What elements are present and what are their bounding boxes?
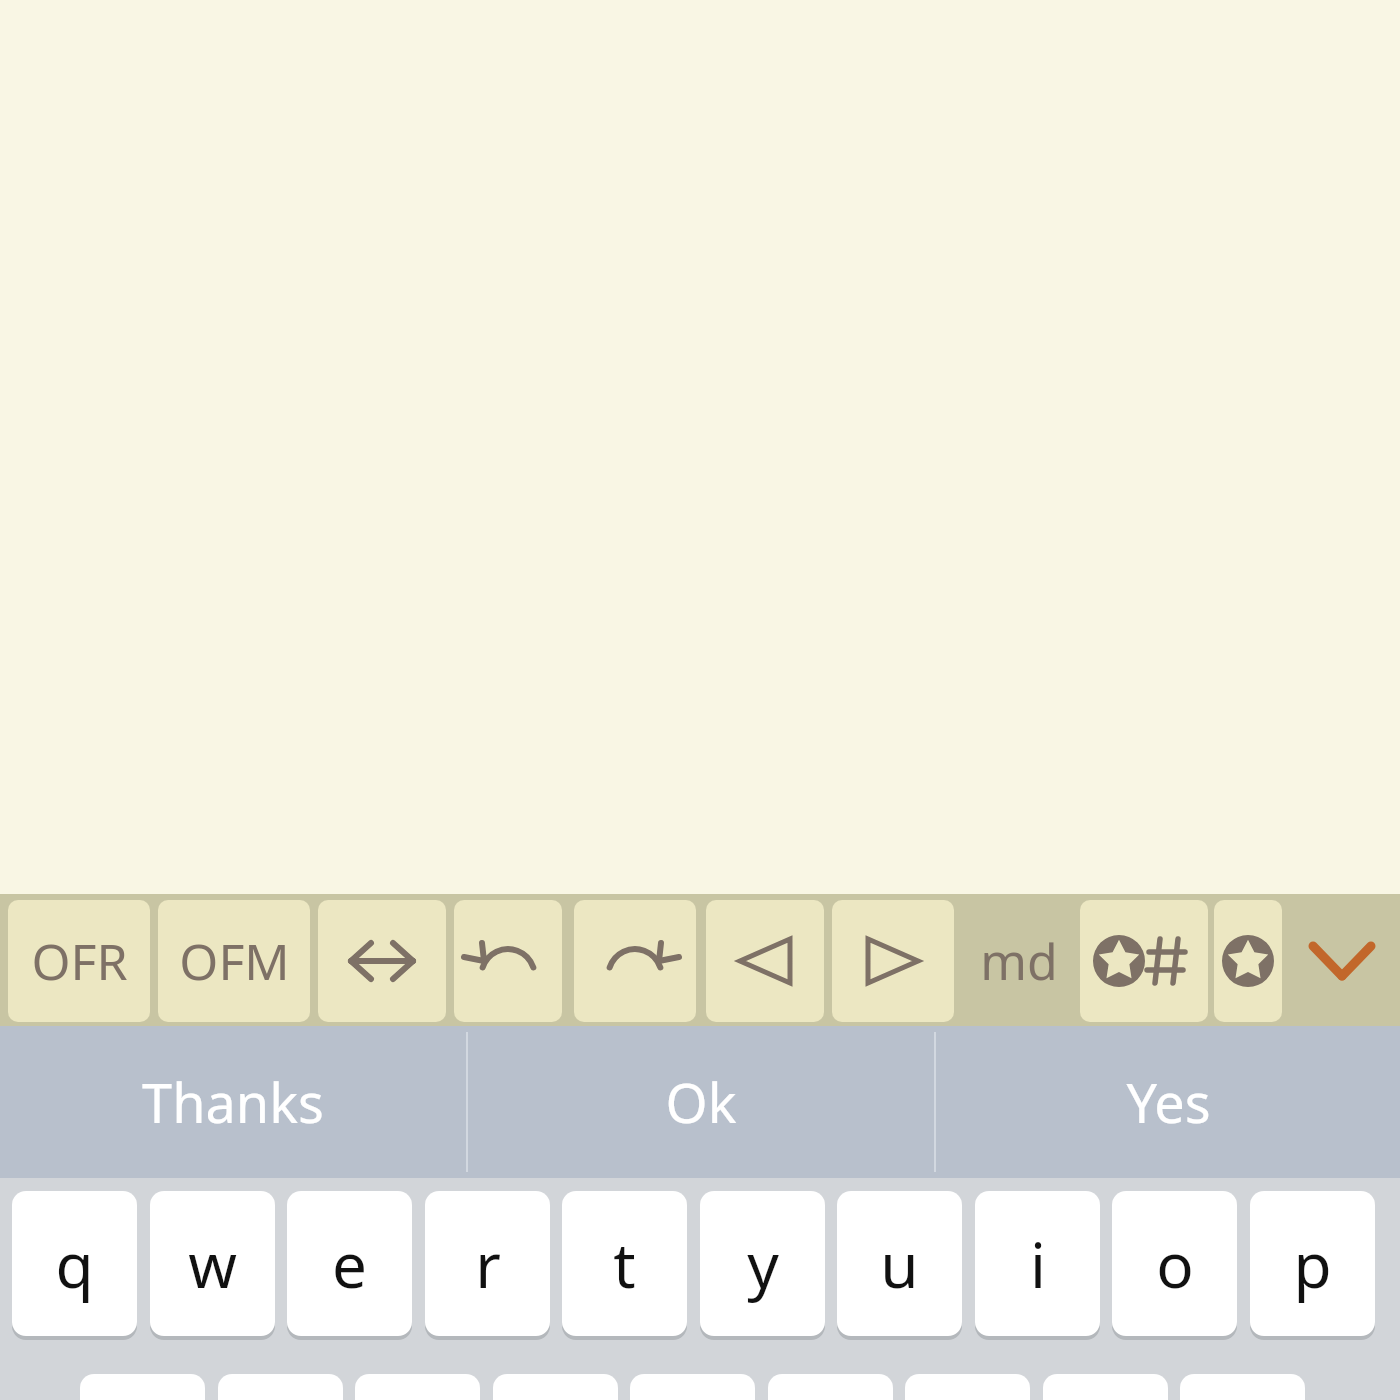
- button[interactable]: [1043, 1374, 1168, 1400]
- button[interactable]: t: [562, 1191, 687, 1336]
- button[interactable]: [905, 1374, 1030, 1400]
- staticText: w: [188, 1222, 237, 1306]
- staticText: u: [880, 1222, 919, 1306]
- button[interactable]: OFM: [158, 900, 310, 1022]
- button[interactable]: Move right: [832, 900, 954, 1022]
- button[interactable]: [218, 1374, 343, 1400]
- staticText: p: [1293, 1222, 1332, 1306]
- button[interactable]: u: [837, 1191, 962, 1336]
- staticText: Yes: [1126, 1065, 1211, 1139]
- button[interactable]: q: [12, 1191, 137, 1336]
- button[interactable]: o: [1112, 1191, 1237, 1336]
- button[interactable]: [630, 1374, 755, 1400]
- staticText: y: [747, 1222, 779, 1306]
- button[interactable]: OFR: [8, 900, 150, 1022]
- staticText: o: [1156, 1222, 1194, 1306]
- button[interactable]: Yes: [936, 1026, 1400, 1178]
- button[interactable]: Move left: [706, 900, 824, 1022]
- button[interactable]: w: [150, 1191, 275, 1336]
- button[interactable]: p: [1250, 1191, 1375, 1336]
- button[interactable]: e: [287, 1191, 412, 1336]
- staticText: OFR: [31, 927, 128, 995]
- staticText: OFM: [179, 927, 290, 995]
- staticText: i: [1030, 1222, 1046, 1306]
- button[interactable]: r: [425, 1191, 550, 1336]
- button[interactable]: Collapse toolbar: [1292, 900, 1392, 1022]
- button[interactable]: [80, 1374, 205, 1400]
- button[interactable]: [768, 1374, 893, 1400]
- button[interactable]: Thanks: [0, 1026, 466, 1178]
- button[interactable]: md: [962, 900, 1076, 1022]
- button[interactable]: Resize: [318, 900, 446, 1022]
- staticText: t: [613, 1222, 636, 1306]
- button[interactable]: [355, 1374, 480, 1400]
- button[interactable]: y: [700, 1191, 825, 1336]
- button[interactable]: Undo: [454, 900, 562, 1022]
- button[interactable]: Redo: [574, 900, 696, 1022]
- staticText: e: [332, 1222, 367, 1306]
- button[interactable]: i: [975, 1191, 1100, 1336]
- button[interactable]: Favorite: [1214, 900, 1282, 1022]
- staticText: Ok: [665, 1065, 737, 1139]
- staticText: r: [475, 1222, 501, 1306]
- button[interactable]: Favorite tag: [1080, 900, 1208, 1022]
- button[interactable]: [1180, 1374, 1305, 1400]
- button[interactable]: [493, 1374, 618, 1400]
- staticText: Thanks: [142, 1065, 324, 1139]
- staticText: q: [55, 1222, 94, 1306]
- button[interactable]: Ok: [468, 1026, 934, 1178]
- staticText: md: [980, 927, 1058, 995]
